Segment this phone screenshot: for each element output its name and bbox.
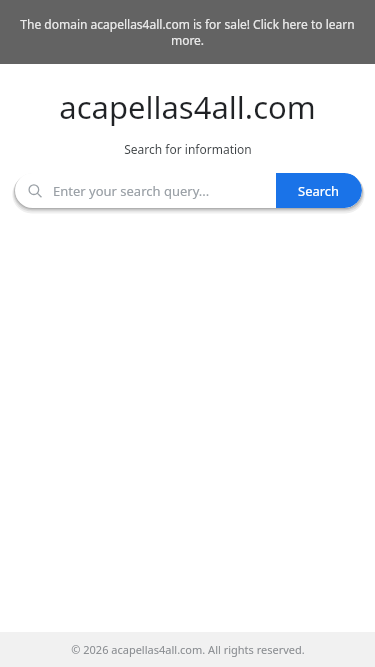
button[interactable]: Search [15,173,362,208]
staticText: Search for information [124,141,252,157]
other: Search [27,183,43,199]
staticText: Enter your search query... [53,182,276,200]
staticText: The domain acapellas4all.com is for sale… [14,16,361,48]
button[interactable]: Search [276,173,362,208]
staticText: © 2026 acapellas4all.com. All rights res… [71,642,305,657]
staticText: acapellas4all.com [59,86,316,128]
staticText: Search [298,182,340,200]
button[interactable]: The domain acapellas4all.com is for sale… [0,0,375,64]
